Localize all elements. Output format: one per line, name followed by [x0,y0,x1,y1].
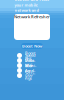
button[interactable]: Boost Now [21,43,43,49]
button[interactable]: Data Monitor [17,63,47,68]
button[interactable]: Settings [17,73,47,78]
staticText: Data Monitor [25,57,36,73]
staticText: Refresh and reset your mobile network an… [14,0,49,18]
staticText: Boost Net [25,50,36,61]
staticText: Network Refresher [14,14,50,19]
button[interactable]: Boost Net [17,53,47,58]
staticText: Boost Now [22,43,42,49]
staticText: Settings [25,70,35,81]
button[interactable]: Wifi Analyzer [17,68,47,73]
staticText: Speed Indicator [25,52,35,68]
button[interactable]: Speed Indicator [17,58,47,63]
staticText: Wifi Analyzer [25,62,35,78]
